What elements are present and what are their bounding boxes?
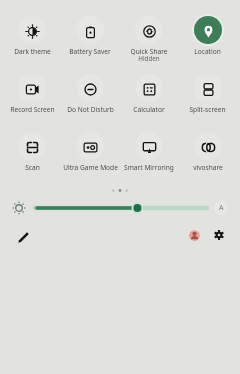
staticText: Location	[194, 47, 221, 56]
staticText: Hidden	[138, 54, 160, 62]
staticText: Record Screen	[10, 105, 55, 114]
staticText: Split-screen	[189, 105, 226, 114]
button[interactable]: Auto brightness	[214, 201, 228, 215]
staticText: Battery Saver	[69, 47, 111, 56]
button[interactable]: Quick Share	[119, 14, 178, 64]
button[interactable]: User profile	[189, 230, 200, 241]
staticText: Ultra Game Mode	[63, 163, 118, 172]
staticText: Scan	[25, 163, 40, 172]
staticText: Smart Mirroring	[124, 163, 174, 172]
staticText: Calculator	[133, 105, 165, 114]
staticText: Do Not Disturb	[67, 105, 114, 114]
button[interactable]: Scan	[3, 130, 61, 172]
staticText: vivoshare	[193, 163, 223, 172]
button[interactable]: Split-screen	[178, 72, 237, 114]
staticText: Quick Share	[130, 47, 168, 56]
button[interactable]: Do Not Disturb	[61, 72, 119, 114]
button[interactable]: Dark theme	[3, 14, 61, 56]
button[interactable]: Record Screen	[3, 72, 61, 114]
button[interactable]: Brightness	[9, 198, 29, 218]
button[interactable]: Battery Saver	[61, 14, 119, 56]
button[interactable]: Brightness slider	[30, 201, 210, 215]
button[interactable]: Location	[178, 14, 237, 56]
staticText: A	[219, 203, 224, 213]
button[interactable]: Edit tiles	[16, 230, 30, 244]
staticText: Dark theme	[14, 47, 51, 56]
button[interactable]: Smart Mirroring	[119, 130, 178, 172]
button[interactable]: Ultra Game Mode	[61, 130, 119, 172]
button[interactable]: Calculator	[119, 72, 178, 114]
button[interactable]: Settings	[213, 229, 225, 241]
button[interactable]: vivoshare	[178, 130, 237, 172]
